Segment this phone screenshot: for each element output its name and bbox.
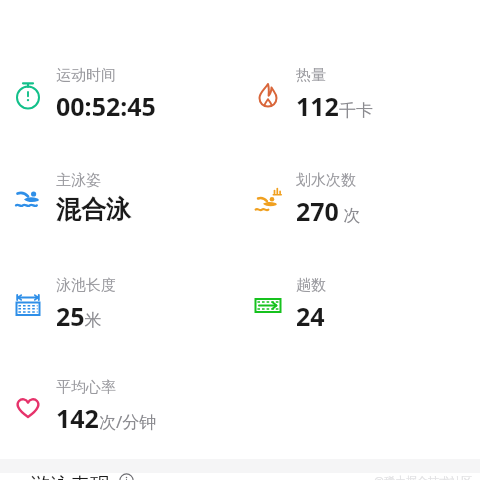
staticText: 泳池长度	[56, 276, 116, 295]
button[interactable]: 游泳表现	[30, 473, 134, 480]
button[interactable]: 泳池长度	[0, 276, 240, 333]
staticText: @稀土掘金技术社区	[374, 473, 472, 480]
staticText: 142次/分钟	[56, 401, 157, 435]
staticText: 平均心率	[56, 378, 116, 397]
staticText: 00:52:45	[56, 89, 156, 123]
button[interactable]: 热量	[240, 66, 480, 123]
staticText: 热量	[296, 66, 326, 85]
button[interactable]: 趟数	[240, 276, 480, 333]
staticText: 趟数	[296, 276, 326, 295]
staticText: 主泳姿	[56, 171, 101, 190]
button[interactable]: 运动时间	[0, 66, 240, 123]
staticText: 划水次数	[296, 171, 356, 190]
button[interactable]: 说明	[119, 473, 134, 480]
staticText: 运动时间	[56, 66, 116, 85]
staticText: 270 次	[296, 194, 361, 228]
button[interactable]: 划水次数	[240, 171, 480, 228]
staticText: 24	[296, 299, 325, 333]
staticText: 112千卡	[296, 89, 373, 123]
staticText: 混合泳	[56, 194, 131, 225]
button[interactable]: 平均心率	[0, 378, 240, 435]
staticText: 25米	[56, 299, 102, 333]
button[interactable]: 主泳姿	[0, 171, 240, 225]
staticText: 游泳表现	[30, 473, 110, 480]
